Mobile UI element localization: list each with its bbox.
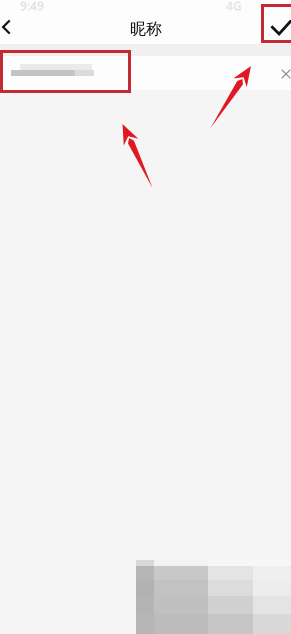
button[interactable]: Done — [270, 20, 291, 36]
button[interactable]: Clear text — [281, 69, 291, 79]
staticText: 昵称 — [130, 19, 162, 39]
staticText: 9:49 — [20, 0, 44, 14]
staticText: 4G — [226, 0, 242, 14]
button[interactable]: Back — [0, 16, 24, 38]
